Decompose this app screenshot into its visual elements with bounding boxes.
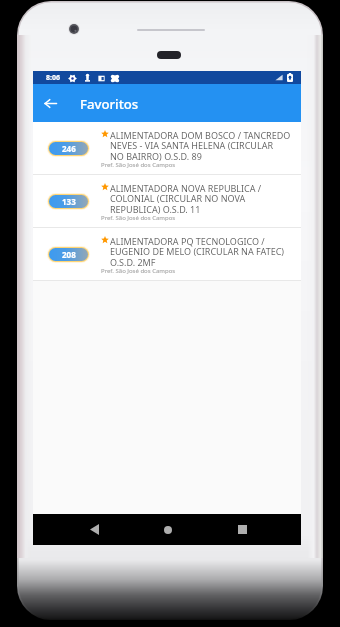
- staticText: NO BAIRRO) O.S.D. 89: [110, 150, 202, 162]
- staticText: REPUBLICA) O.S.D. 11: [110, 203, 201, 215]
- staticText: O.S.D. 2MF: [110, 256, 156, 268]
- button[interactable]: 133: [33, 175, 301, 227]
- staticText: ALIMENTADORA PQ TECNOLOGICO /: [110, 235, 265, 247]
- staticText: 133: [62, 196, 76, 207]
- staticText: ALIMENTADORA NOVA REPUBLICA /: [110, 182, 262, 194]
- staticText: Favoritos: [80, 95, 139, 113]
- staticText: 208: [62, 249, 76, 260]
- staticText: COLONIAL (CIRCULAR NO NOVA: [110, 192, 246, 204]
- staticText: EUGENIO DE MELO (CIRCULAR NA FATEC): [110, 245, 285, 257]
- staticText: Pref. São José dos Campos: [101, 267, 176, 275]
- staticText: NEVES - VIA SANTA HELENA (CIRCULAR: [110, 139, 274, 151]
- staticText: Pref. São José dos Campos: [101, 214, 176, 222]
- button[interactable]: Recents: [227, 514, 257, 545]
- button[interactable]: 208: [33, 228, 301, 280]
- staticText: Pref. São José dos Campos: [101, 161, 176, 169]
- staticText: 8:06: [46, 73, 60, 83]
- staticText: 246: [62, 143, 76, 154]
- button[interactable]: 246: [33, 122, 301, 174]
- button[interactable]: Home: [153, 514, 183, 545]
- button[interactable]: Back: [39, 92, 61, 114]
- staticText: ALIMENTADORA DOM BOSCO / TANCREDO: [110, 129, 291, 141]
- button[interactable]: Back: [79, 514, 109, 545]
